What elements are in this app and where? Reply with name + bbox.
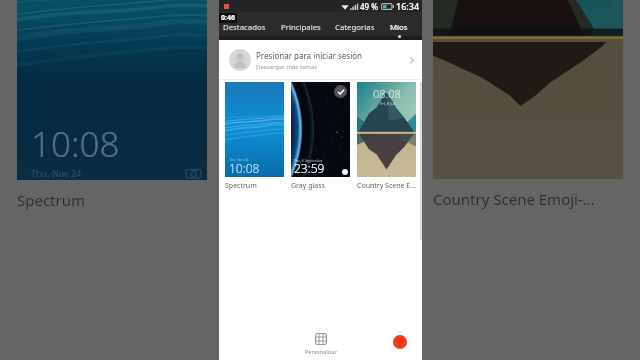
button[interactable]: Destacados: [223, 12, 266, 40]
button[interactable]: Principales: [281, 12, 321, 40]
other: Abrir: [406, 55, 417, 66]
button[interactable]: Presionar para iniciar sesión: [219, 41, 422, 79]
button[interactable]: Mios: [390, 12, 408, 40]
staticText: Descargar más temas: [256, 63, 318, 71]
staticText: Mios: [390, 22, 408, 33]
staticText: Personalizar: [305, 348, 337, 355]
staticText: Fri, 8 Jul: [380, 101, 395, 106]
staticText: Thu, Nov 24: [31, 167, 82, 179]
staticText: Gray glass: [291, 181, 325, 191]
staticText: Principales: [281, 22, 321, 33]
staticText: Destacados: [223, 22, 266, 33]
staticText: Country Scene Emoji-...: [357, 181, 416, 191]
staticText: 0:46: [221, 13, 235, 23]
button[interactable]: Personalizar: [299, 333, 343, 355]
staticText: 10:08: [229, 160, 260, 176]
staticText: Spectrum: [225, 181, 257, 191]
staticText: 23:59: [294, 160, 325, 176]
staticText: Categorias: [335, 22, 375, 33]
staticText: 49 %: [360, 1, 379, 12]
button[interactable]: Categorias: [335, 12, 375, 40]
button[interactable]: Tue, 6 September: [291, 82, 350, 191]
button[interactable]: Crear tema: [393, 335, 407, 349]
staticText: Thu, Nov 24: [229, 157, 249, 162]
button[interactable]: Thu, Nov 24: [225, 82, 284, 191]
staticText: Tue, 6 September: [294, 158, 323, 163]
staticText: Presionar para iniciar sesión: [256, 50, 363, 61]
staticText: Country Scene Emoji-...: [433, 189, 595, 209]
staticText: Spectrum: [17, 190, 86, 210]
staticText: 10:08: [31, 120, 120, 168]
staticText: 16:34: [396, 0, 420, 12]
button[interactable]: 08:08: [357, 82, 416, 191]
staticText: 08:08: [373, 86, 401, 101]
